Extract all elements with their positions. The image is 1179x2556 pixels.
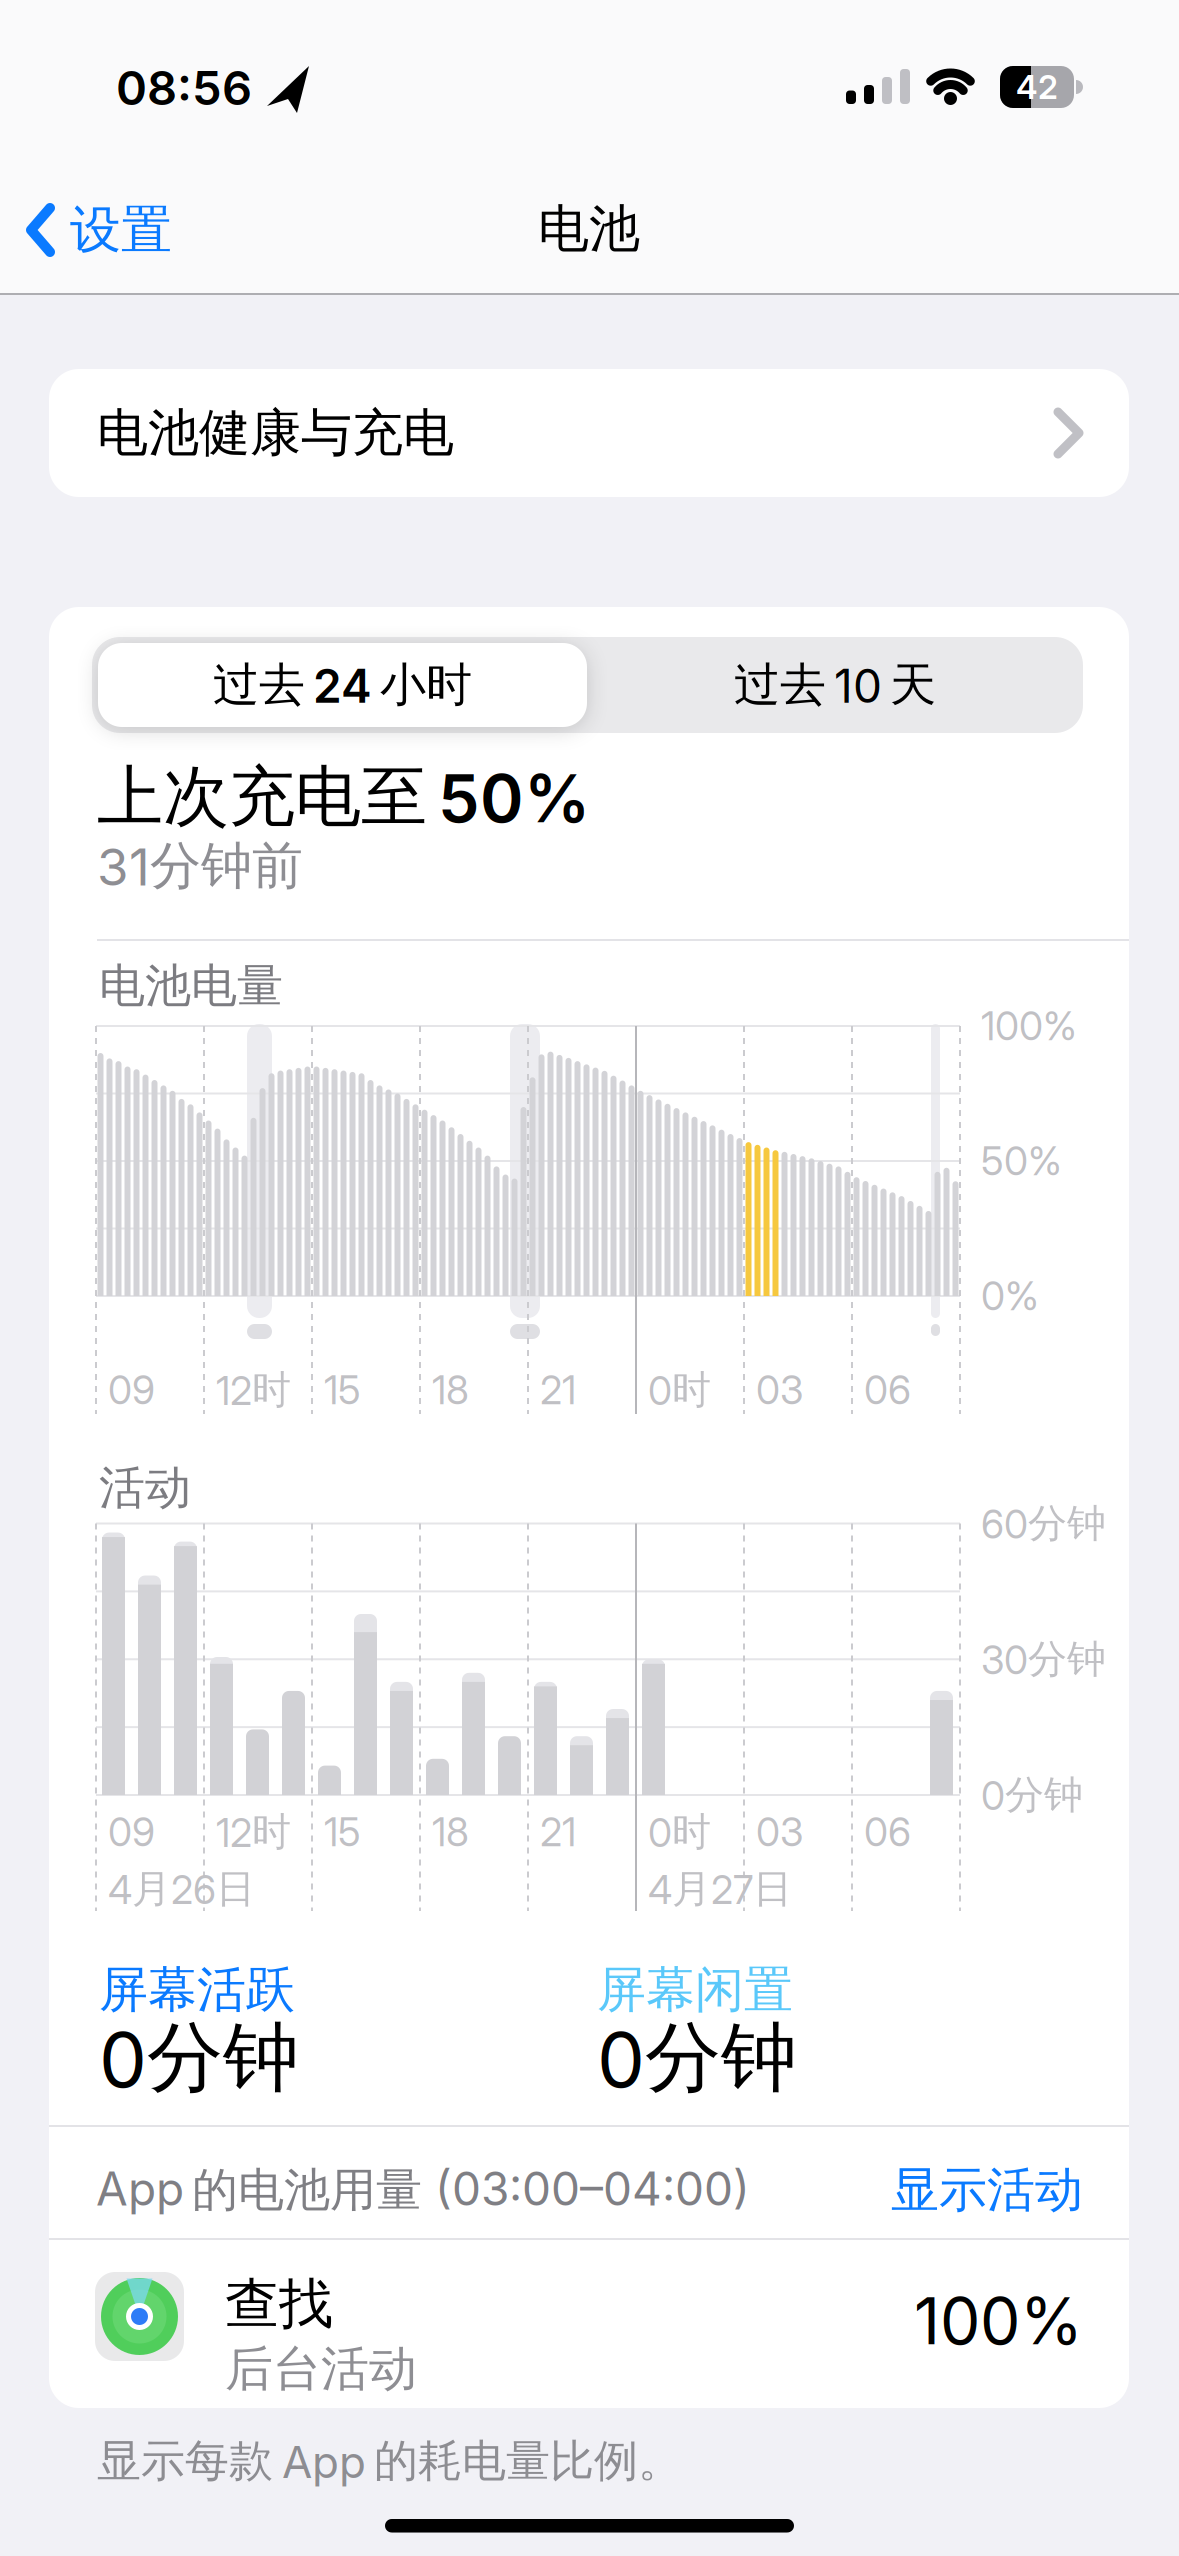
staticText: 过去 24 小时 xyxy=(213,656,472,714)
staticText: 电池 xyxy=(538,197,640,261)
staticText: 42 xyxy=(1016,67,1058,107)
staticText: App 的电池用量 (03:00–04:00) xyxy=(96,2161,750,2219)
staticText: 100% xyxy=(981,1002,1077,1050)
button[interactable] xyxy=(92,637,581,721)
staticText: 08:56 xyxy=(116,60,252,116)
staticText: 100% xyxy=(914,2282,1083,2360)
staticText: 21 xyxy=(540,1366,576,1414)
staticText: 09 xyxy=(108,1808,155,1856)
staticText: 上次充电至 50% xyxy=(97,755,590,838)
staticText: 过去 10 天 xyxy=(734,656,936,714)
staticText: 显示活动 xyxy=(891,2160,1083,2220)
staticText: 0时 xyxy=(648,1365,711,1414)
staticText: 12时 xyxy=(216,1365,291,1414)
staticText: 15 xyxy=(324,1366,361,1414)
staticText: 0% xyxy=(981,1272,1039,1320)
staticText: 后台活动 xyxy=(225,2339,417,2399)
button[interactable]: 设置 xyxy=(0,0,220,90)
staticText: 屏幕闲置 xyxy=(597,1959,793,2021)
staticText: 03 xyxy=(756,1366,803,1414)
staticText: 30分钟 xyxy=(981,1635,1106,1684)
staticText: 12时 xyxy=(216,1807,291,1856)
staticText: 06 xyxy=(864,1366,911,1414)
staticText: 设置 xyxy=(70,198,172,262)
staticText: 18 xyxy=(432,1366,469,1414)
staticText: 查找 xyxy=(225,2270,333,2338)
staticText: 0分钟 xyxy=(99,2010,299,2106)
staticText: 电池电量 xyxy=(99,957,283,1015)
staticText: 50% xyxy=(981,1137,1062,1185)
staticText: 31分钟前 xyxy=(97,834,303,898)
staticText: 0分钟 xyxy=(981,1770,1083,1819)
staticText: 0时 xyxy=(648,1807,711,1856)
staticText: 活动 xyxy=(99,1459,191,1517)
staticText: 03 xyxy=(756,1808,803,1856)
staticText: 0分钟 xyxy=(597,2010,797,2106)
staticText: 4月26日 xyxy=(108,1864,255,1913)
staticText: 4月27日 xyxy=(648,1864,792,1913)
staticText: 18 xyxy=(432,1808,469,1856)
staticText: 60分钟 xyxy=(981,1499,1106,1548)
staticText: 15 xyxy=(324,1808,361,1856)
staticText: 09 xyxy=(108,1366,155,1414)
staticText: 21 xyxy=(540,1808,576,1856)
staticText: 电池健康与充电 xyxy=(97,401,454,465)
staticText: 06 xyxy=(864,1808,911,1856)
staticText: 屏幕活跃 xyxy=(99,1959,295,2021)
button[interactable]: 电池健康与充电 xyxy=(0,0,1080,128)
button[interactable]: 查找 xyxy=(0,0,1080,170)
staticText: 显示每款 App 的耗电量比例。 xyxy=(97,2433,682,2489)
button[interactable]: 过去 10 天 xyxy=(92,637,588,697)
